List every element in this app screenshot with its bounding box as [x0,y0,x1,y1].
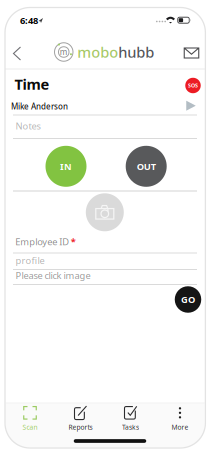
button[interactable]: Reports [57,405,103,433]
staticText: Time [14,74,49,94]
staticText: profile [15,254,44,267]
button[interactable]: Take photo [86,193,124,231]
button[interactable]: OUT [126,146,167,187]
staticText: More [171,423,188,432]
button[interactable]: More [157,405,203,433]
button[interactable]: IN [45,146,86,187]
staticText: SOS [188,82,198,89]
staticText: IN [60,160,72,172]
staticText: Employee ID [15,235,69,248]
staticText: Tasks [122,423,139,432]
staticText: Mike Anderson [11,101,68,112]
staticText: OUT [137,160,156,172]
button[interactable]: Scan [7,405,53,433]
staticText: hubb [118,42,154,62]
staticText: mobo [77,42,118,62]
staticText: * [71,235,76,248]
staticText: GO [181,293,195,306]
button[interactable]: Messages [180,44,203,62]
staticText: Please click image [15,269,90,282]
staticText: Notes [15,120,40,132]
button[interactable]: SOS [185,78,201,93]
button[interactable]: Back [7,41,26,66]
button[interactable]: GO [175,286,201,313]
staticText: Scan [22,423,37,432]
button[interactable]: Tasks [107,405,153,433]
staticText: m [60,47,68,57]
button[interactable]: Start [184,99,198,113]
staticText: 6:48 [20,14,38,27]
staticText: Reports [68,423,92,432]
